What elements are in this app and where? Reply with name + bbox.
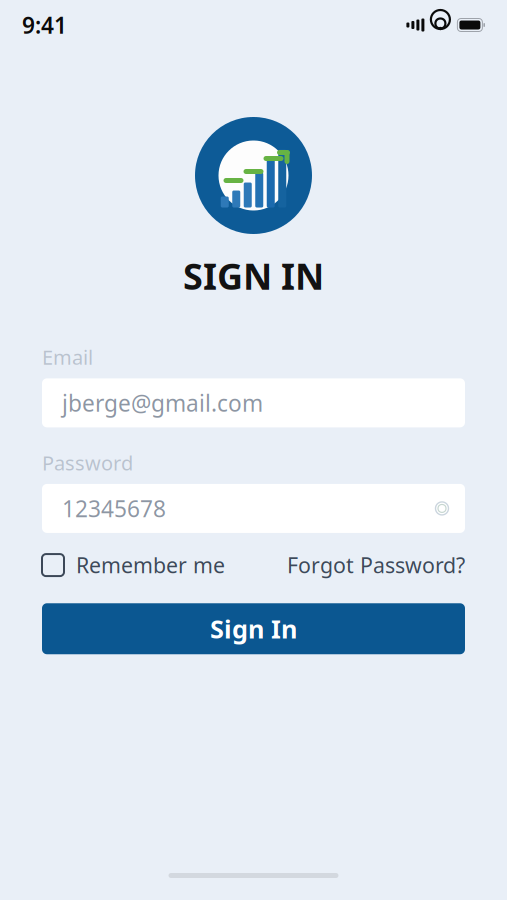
- button[interactable]: Remember me: [42, 551, 225, 579]
- staticText: Forgot Password?: [287, 551, 465, 579]
- button[interactable]: Forgot Password?: [287, 551, 465, 579]
- staticText: SIGN IN: [183, 252, 324, 300]
- staticText: Password: [42, 449, 133, 476]
- button[interactable]: jberge@gmail.com: [42, 378, 465, 427]
- staticText: 9:41: [22, 10, 67, 40]
- button[interactable]: 12345678: [42, 484, 419, 533]
- staticText: jberge@gmail.com: [62, 388, 263, 418]
- staticText: Email: [42, 344, 93, 370]
- button[interactable]: Sign In: [42, 603, 465, 654]
- staticText: Sign In: [210, 612, 297, 645]
- button[interactable]: Show password: [419, 484, 465, 533]
- staticText: 12345678: [62, 493, 166, 523]
- staticText: Remember me: [76, 551, 225, 579]
